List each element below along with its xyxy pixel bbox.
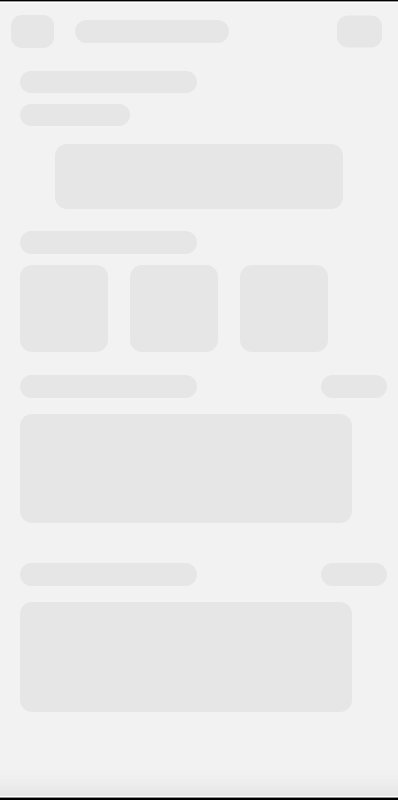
button[interactable]: See all [321,563,387,586]
button[interactable]: Profile [337,15,382,47]
button[interactable]: See all [321,375,387,398]
